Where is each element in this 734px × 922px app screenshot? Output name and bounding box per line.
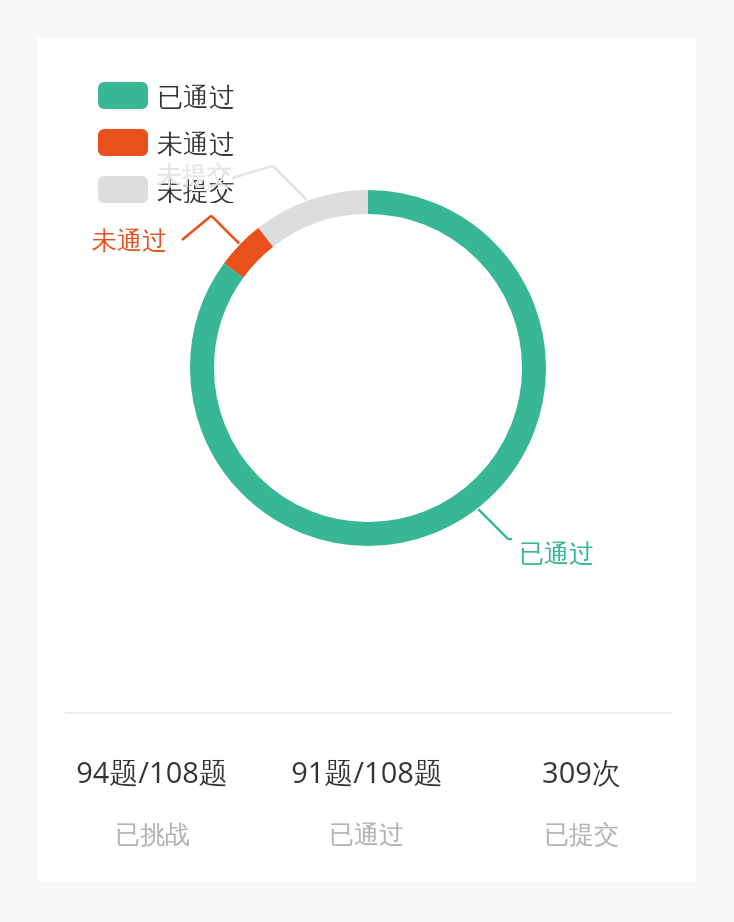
staticText: 未通过 [157, 128, 235, 156]
staticText: 已通过 [157, 81, 235, 109]
button[interactable]: 未通过 [98, 128, 235, 156]
staticText: 已挑战 [115, 819, 190, 850]
staticText: 未通过 [92, 225, 167, 256]
staticText: 91题/108题 [291, 752, 443, 792]
staticText: 未提交 [157, 160, 232, 191]
staticText: 已提交 [544, 819, 619, 850]
staticText: 已通过 [329, 819, 404, 850]
button[interactable]: 已通过 [519, 538, 594, 569]
staticText: 未提交 [157, 175, 235, 203]
button[interactable]: 未提交 [98, 175, 235, 203]
staticText: 已通过 [519, 538, 594, 569]
button[interactable]: 91题/108题 [259, 752, 474, 850]
button[interactable] [37, 37, 696, 882]
staticText: 94题/108题 [76, 752, 228, 792]
button[interactable]: 94题/108题 [45, 752, 259, 850]
button[interactable]: 未通过 [92, 225, 167, 256]
button[interactable]: 已通过 [98, 81, 235, 109]
staticText: 309次 [542, 752, 621, 792]
button[interactable]: 309次 [474, 752, 689, 850]
